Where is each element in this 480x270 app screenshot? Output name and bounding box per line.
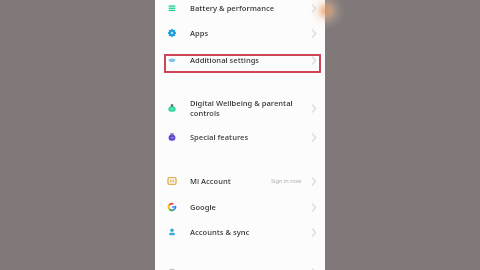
staticText: Mi Account [190,176,231,186]
staticText: Additional settings [190,55,260,65]
button[interactable]: Privacy protection [155,260,325,270]
button[interactable]: Accounts & sync [155,220,325,244]
staticText: Google [190,202,216,212]
other: Touch indicator [307,0,345,30]
button[interactable]: Mi Account [155,169,325,193]
staticText: Digital Wellbeing & parental controls [190,98,293,118]
button[interactable]: Google [155,195,325,219]
button[interactable]: Battery & performance [155,0,325,20]
staticText: Special features [190,132,249,142]
button[interactable]: Additional settings [155,48,325,72]
button[interactable]: Special features [155,125,325,149]
staticText: Accounts & sync [190,227,250,237]
staticText: Battery & performance [190,3,275,13]
staticText: Sign in now [271,177,302,185]
button[interactable]: Digital Wellbeing & parental controls [155,96,325,120]
staticText: Apps [190,28,209,38]
button[interactable]: Apps [155,21,325,45]
